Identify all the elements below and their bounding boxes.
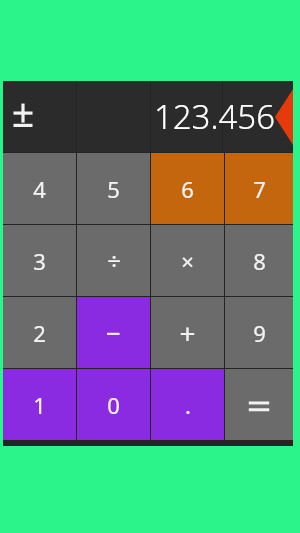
staticText: 9	[253, 318, 266, 348]
staticText: 4	[33, 174, 46, 204]
button[interactable]: 8	[225, 225, 293, 296]
button[interactable]: .	[151, 369, 224, 440]
staticText: 123.456	[153, 94, 275, 139]
staticText: ÷	[107, 244, 121, 277]
button[interactable]: ÷	[77, 225, 150, 296]
button[interactable]: 9	[225, 297, 293, 368]
button[interactable]: Backspace	[275, 89, 293, 145]
staticText: +	[179, 314, 196, 352]
button[interactable]: 4	[3, 153, 76, 224]
staticText: 6	[181, 174, 194, 204]
button[interactable]: 6	[151, 153, 224, 224]
button[interactable]: 3	[3, 225, 76, 296]
button[interactable]: Equals	[225, 369, 293, 440]
staticText: 0	[107, 390, 120, 420]
button[interactable]: ×	[151, 225, 224, 296]
staticText: 7	[253, 174, 266, 204]
button[interactable]: +	[151, 297, 224, 368]
staticText: ×	[181, 246, 194, 276]
staticText: −	[106, 315, 121, 350]
button[interactable]: −	[77, 297, 150, 368]
button[interactable]: 5	[77, 153, 150, 224]
staticText: .	[185, 390, 191, 420]
staticText: 5	[107, 174, 120, 204]
button[interactable]: 7	[225, 153, 293, 224]
button[interactable]: Plus minus toggle sign	[3, 81, 76, 152]
button[interactable]: 0	[77, 369, 150, 440]
staticText: 8	[253, 246, 266, 276]
button[interactable]: 1	[3, 369, 76, 440]
staticText: 1	[33, 390, 46, 420]
staticText: 3	[33, 246, 46, 276]
staticText: 2	[33, 318, 46, 348]
button[interactable]: 2	[3, 297, 76, 368]
